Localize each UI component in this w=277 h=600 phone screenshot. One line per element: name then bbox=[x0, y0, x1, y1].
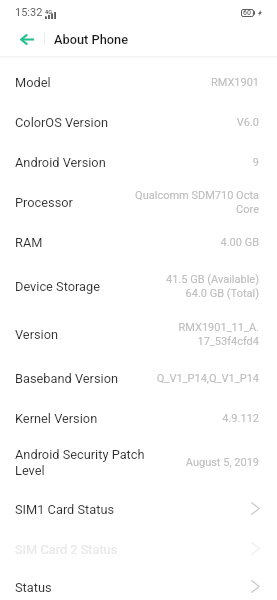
staticText: 15:32 bbox=[15, 6, 43, 19]
staticText: RMX1901_11_A. 17_53f4cfd4 bbox=[178, 320, 259, 348]
button[interactable]: Device Storage bbox=[0, 262, 277, 310]
button[interactable]: SIM Card 2 Status bbox=[0, 529, 277, 569]
button[interactable]: Android Version bbox=[0, 142, 277, 182]
staticText: 41.5 GB (Available) 64.0 GB (Total) bbox=[165, 272, 259, 300]
staticText: RMX1901 bbox=[210, 75, 259, 89]
staticText: Android Version bbox=[15, 155, 106, 170]
staticText: ColorOS Version bbox=[15, 115, 109, 130]
staticText: Kernel Version bbox=[15, 411, 98, 426]
button[interactable]: Baseband Version bbox=[0, 358, 277, 398]
staticText: SIM1 Card Status bbox=[15, 502, 115, 517]
staticText: Qualcomm SDM710 Octa Core bbox=[131, 188, 259, 216]
button[interactable]: RAM bbox=[0, 222, 277, 262]
button[interactable]: SIM1 Card Status bbox=[0, 489, 277, 529]
button[interactable]: Kernel Version bbox=[0, 398, 277, 438]
staticText: About Phone bbox=[54, 32, 129, 47]
staticText: RAM bbox=[15, 235, 43, 250]
staticText: V6.0 bbox=[236, 115, 259, 129]
staticText: August 5, 2019 bbox=[185, 455, 259, 469]
staticText: 60 bbox=[243, 9, 251, 17]
button[interactable]: Android Security Patch Level bbox=[0, 438, 277, 486]
staticText: 4.00 GB bbox=[220, 235, 259, 249]
staticText: Android Security Patch Level bbox=[15, 446, 161, 478]
button[interactable]: Processor bbox=[0, 182, 277, 222]
button[interactable]: Model bbox=[0, 62, 277, 102]
staticText: 4.9.112 bbox=[222, 411, 259, 425]
staticText: Status bbox=[15, 580, 52, 595]
staticText: Baseband Version bbox=[15, 371, 119, 386]
staticText: Processor bbox=[15, 195, 73, 210]
button[interactable]: Back bbox=[0, 24, 44, 56]
button[interactable]: ColorOS Version bbox=[0, 102, 277, 142]
staticText: Model bbox=[15, 75, 51, 90]
button[interactable]: Version bbox=[0, 310, 277, 358]
staticText: Q_V1_P14,Q_V1_P14 bbox=[156, 371, 259, 385]
staticText: 4G bbox=[45, 9, 52, 15]
staticText: Device Storage bbox=[15, 279, 101, 294]
staticText: Version bbox=[15, 327, 59, 342]
button[interactable]: Status bbox=[0, 569, 277, 600]
staticText: 9 bbox=[252, 155, 259, 169]
staticText: SIM Card 2 Status bbox=[15, 542, 118, 557]
